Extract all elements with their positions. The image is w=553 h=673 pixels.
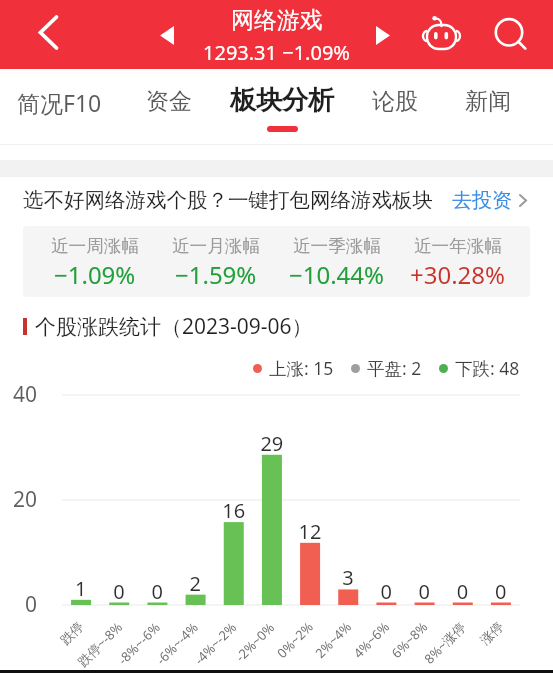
staticText: 1293.31 −1.09%	[203, 39, 350, 66]
staticText: 近一月涨幅	[172, 235, 260, 257]
button[interactable]: 板块分析	[227, 69, 337, 145]
staticText: −1.09%	[54, 258, 136, 291]
staticText: 网络游戏	[231, 6, 323, 35]
button[interactable]: Back	[0, 0, 68, 69]
staticText: 新闻	[465, 87, 511, 116]
staticText: 下跌: 48	[455, 356, 520, 380]
staticText: 近一年涨幅	[414, 235, 502, 257]
staticText: 选不好网络游戏个股？一键打包网络游戏板块	[23, 187, 433, 213]
staticText: 简况F10	[17, 87, 102, 118]
button[interactable]: Next sector	[364, 12, 402, 58]
staticText: 近一季涨幅	[293, 235, 381, 257]
button[interactable]: AI assistant	[417, 8, 465, 60]
button[interactable]: 简况F10	[4, 69, 114, 145]
staticText: 近一周涨幅	[51, 235, 139, 257]
button[interactable]: Previous sector	[148, 12, 186, 58]
staticText: −10.44%	[289, 258, 385, 291]
staticText: 个股涨跌统计（2023-09-06）	[35, 312, 313, 341]
button[interactable]: Search	[485, 6, 537, 62]
button[interactable]: 选不好网络游戏个股？一键打包网络游戏板块	[23, 187, 527, 213]
staticText: −1.59%	[175, 258, 257, 291]
button[interactable]: 资金	[114, 69, 224, 145]
button[interactable]: 新闻	[433, 69, 543, 145]
staticText: 去投资	[452, 188, 512, 213]
staticText: 平盘: 2	[367, 356, 422, 380]
staticText: 上涨: 15	[269, 356, 334, 380]
staticText: 资金	[146, 87, 192, 116]
staticText: +30.28%	[410, 258, 506, 291]
staticText: 板块分析	[230, 84, 334, 117]
staticText: 论股	[372, 87, 418, 116]
button[interactable]: 论股	[340, 69, 450, 145]
